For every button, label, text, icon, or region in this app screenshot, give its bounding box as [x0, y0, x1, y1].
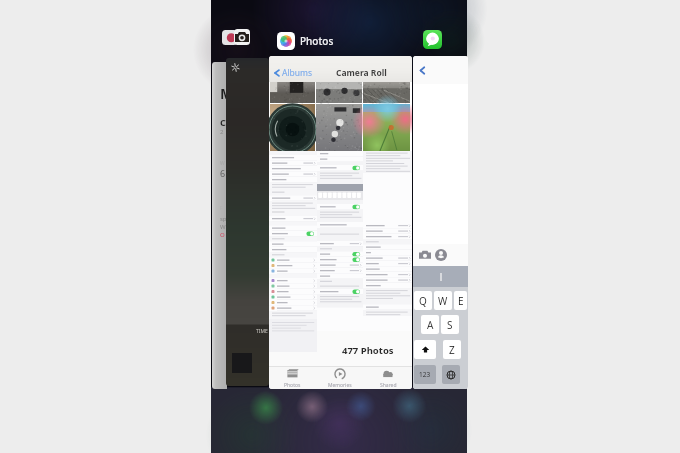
- button[interactable]: Shared: [364, 366, 412, 389]
- button[interactable]: Memories: [316, 366, 364, 389]
- button[interactable]: S: [441, 315, 459, 334]
- button[interactable]: Q: [414, 291, 432, 310]
- staticText: Photos: [284, 382, 301, 389]
- staticText: Memories: [328, 382, 352, 389]
- button[interactable]: Messages: [423, 30, 442, 49]
- button[interactable]: Shift: [414, 340, 436, 359]
- button[interactable]: Albums: [269, 56, 412, 389]
- button[interactable]: Camera: [234, 29, 250, 45]
- staticText: Camera Roll: [336, 67, 387, 79]
- button[interactable]: A: [421, 315, 439, 334]
- staticText: C: [220, 116, 226, 128]
- button[interactable]: App: [222, 30, 237, 45]
- staticText: E: [458, 294, 464, 308]
- staticText: A: [427, 318, 434, 332]
- staticText: 2: [220, 128, 224, 136]
- staticText: Q: [419, 294, 427, 308]
- staticText: S: [447, 318, 453, 332]
- staticText: Z: [449, 343, 455, 357]
- button[interactable]: Photos: [277, 32, 334, 50]
- button[interactable]: Albums: [273, 67, 313, 79]
- button[interactable]: W: [434, 291, 452, 310]
- button[interactable]: M: [212, 62, 227, 389]
- staticText: TIME: [256, 328, 268, 335]
- staticText: Shared: [380, 382, 397, 389]
- staticText: 6: [220, 167, 226, 179]
- staticText: 477 Photos: [342, 344, 394, 357]
- staticText: W: [220, 223, 226, 231]
- staticText: sp: [220, 215, 227, 223]
- staticText: W: [220, 160, 225, 167]
- staticText: 123: [419, 370, 431, 379]
- staticText: M: [220, 84, 227, 103]
- button[interactable]: 123: [414, 365, 436, 384]
- button[interactable]: E: [454, 291, 467, 310]
- staticText: O: [220, 231, 225, 239]
- button[interactable]: Switch keyboard: [442, 365, 460, 384]
- button[interactable]: Q: [413, 56, 468, 389]
- staticText: Photos: [300, 34, 334, 48]
- button[interactable]: Z: [443, 340, 461, 359]
- staticText: W: [438, 294, 448, 308]
- button[interactable]: TIME: [226, 58, 269, 386]
- button[interactable]: Photos: [269, 366, 316, 389]
- staticText: Albums: [282, 67, 313, 79]
